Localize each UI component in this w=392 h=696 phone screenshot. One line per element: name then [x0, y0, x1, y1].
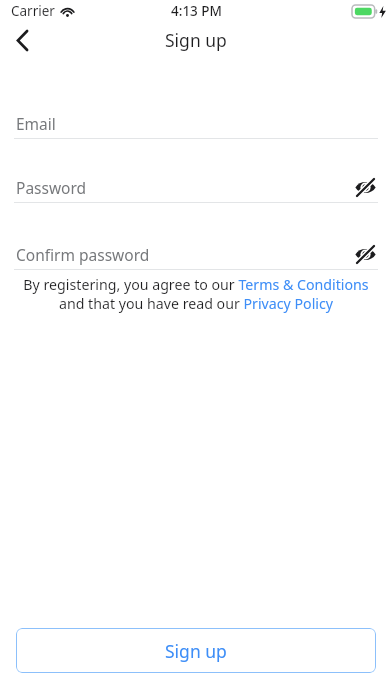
staticText: Carrier: [11, 2, 55, 20]
button[interactable]: By registering, you agree to our Terms &…: [22, 275, 370, 313]
button[interactable]: Show password: [350, 242, 380, 266]
staticText: Email: [16, 113, 56, 134]
button[interactable]: Email: [0, 111, 392, 139]
staticText: Password: [16, 177, 87, 198]
staticText: 4:13 PM: [171, 2, 222, 20]
button[interactable]: Confirm password: [0, 242, 392, 270]
staticText: Sign up: [165, 28, 227, 52]
staticText: By registering, you agree to our Terms &…: [22, 275, 370, 313]
staticText: Confirm password: [16, 244, 150, 265]
button[interactable]: Show password: [350, 175, 380, 199]
button[interactable]: Sign up: [16, 628, 376, 673]
staticText: Sign up: [165, 639, 227, 663]
button[interactable]: Back: [4, 22, 40, 58]
button[interactable]: Password: [0, 175, 392, 203]
